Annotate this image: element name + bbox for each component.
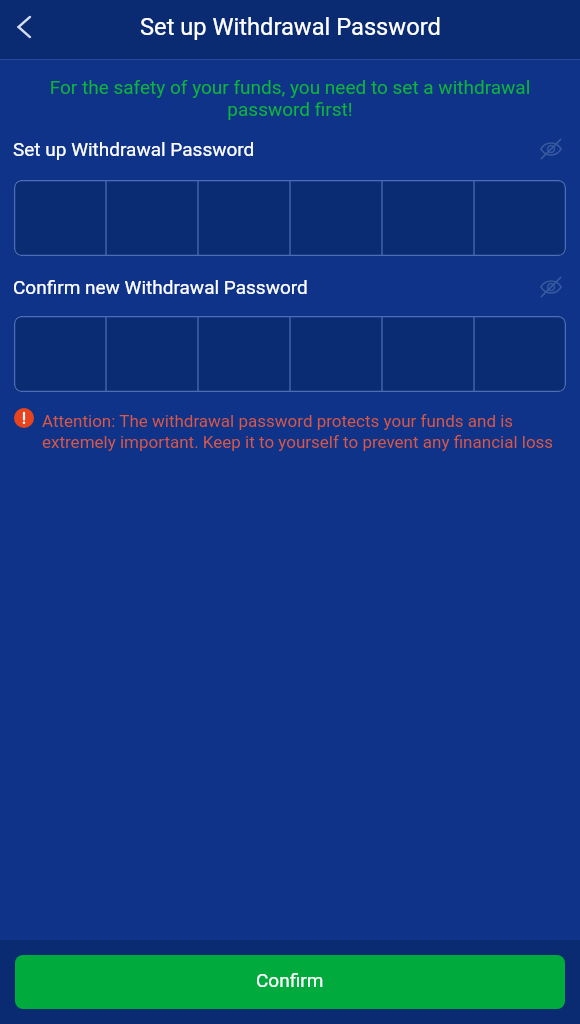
button[interactable]: Password digit 6 — [474, 180, 566, 256]
button[interactable]: Password digit 4 — [290, 316, 382, 392]
button[interactable]: Confirm — [15, 955, 565, 1009]
button[interactable]: Password digit 4 — [290, 180, 382, 256]
button[interactable]: Toggle password visibility — [536, 272, 566, 302]
staticText: Attention: The withdrawal password prote… — [42, 411, 560, 453]
staticText: For the safety of your funds, you need t… — [40, 76, 540, 120]
button[interactable]: Password digit 1 — [14, 316, 106, 392]
button[interactable]: Password digit 5 — [382, 180, 474, 256]
button[interactable]: Password digit 2 — [106, 316, 198, 392]
staticText: Confirm — [256, 969, 324, 991]
staticText: Set up Withdrawal Password — [13, 138, 255, 160]
button[interactable]: Password digit 1 — [14, 180, 106, 256]
staticText: Set up Withdrawal Password — [140, 13, 441, 41]
button[interactable]: Password digit 2 — [106, 180, 198, 256]
button[interactable]: Password digit 5 — [382, 316, 474, 392]
button[interactable]: Toggle password visibility — [536, 134, 566, 164]
staticText: Confirm new Withdrawal Password — [13, 276, 308, 298]
button[interactable]: Password digit 6 — [474, 316, 566, 392]
button[interactable]: Password digit 3 — [198, 180, 290, 256]
button[interactable]: Password digit 3 — [198, 316, 290, 392]
button[interactable]: Back — [0, 6, 47, 53]
